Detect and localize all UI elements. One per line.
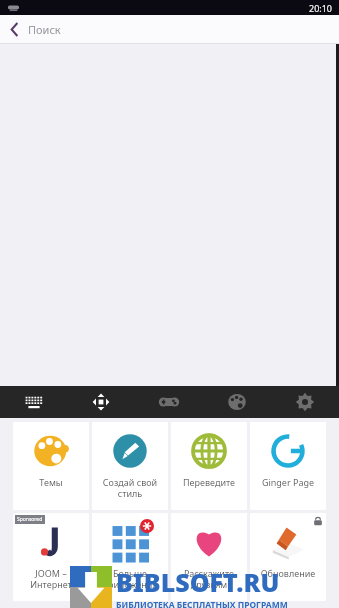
- button[interactable]: Themes: [203, 386, 271, 418]
- button[interactable]: Back: [0, 15, 339, 43]
- staticText: Темы: [15, 476, 87, 488]
- staticText: Создай свой стиль: [94, 476, 166, 499]
- button[interactable]: Games: [135, 386, 203, 418]
- staticText: Больше приложения: [94, 567, 166, 590]
- button[interactable]: JOOM – Интернет: [13, 513, 89, 601]
- button[interactable]: Move cursor: [67, 386, 135, 418]
- button[interactable]: Обновление: [250, 513, 326, 601]
- button[interactable]: Создай свой стиль: [92, 422, 168, 510]
- button[interactable]: Back: [0, 15, 28, 43]
- button[interactable]: Расскажите друзьям: [171, 513, 247, 601]
- staticText: Ginger Page: [252, 476, 324, 488]
- staticText: Обновление: [252, 567, 324, 579]
- staticText: JOOM – Интернет: [15, 567, 87, 590]
- button[interactable]: Settings: [271, 386, 339, 418]
- button[interactable]: Ginger Page: [250, 422, 326, 510]
- button[interactable]: Темы: [13, 422, 89, 510]
- button[interactable]: Переведите: [171, 422, 247, 510]
- button[interactable]: Больше приложения: [92, 513, 168, 601]
- staticText: BIBLSOFT.RU: [116, 565, 280, 599]
- staticText: БИБЛИОТЕКА БЕСПЛАТНЫХ ПРОГРАММ: [116, 599, 288, 608]
- staticText: Sponsored: [17, 516, 43, 523]
- staticText: Поиск: [28, 22, 61, 37]
- staticText: Переведите: [173, 476, 245, 488]
- button[interactable]: Keyboard: [0, 386, 67, 418]
- staticText: 20:10: [309, 2, 333, 14]
- staticText: Расскажите друзьям: [173, 567, 245, 590]
